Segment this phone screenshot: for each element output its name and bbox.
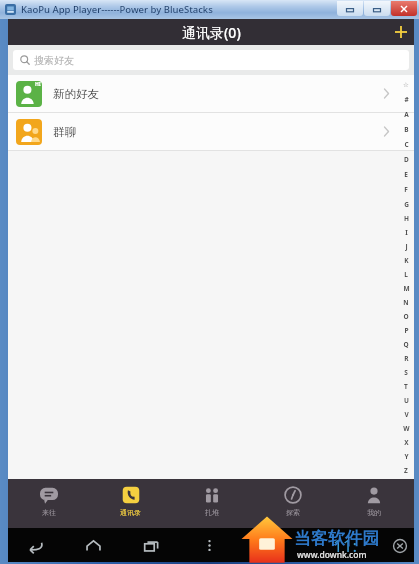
button[interactable]: 探索 [252, 479, 333, 528]
staticText: 通讯录 [120, 508, 141, 517]
staticText: R [404, 354, 409, 363]
button[interactable]: More options [192, 530, 226, 560]
button[interactable]: 搜索好友 [13, 50, 409, 70]
staticText: 我的 [367, 508, 381, 517]
staticText: E [404, 170, 408, 179]
button[interactable]: Window [364, 1, 390, 16]
staticText: 探索 [286, 508, 300, 517]
staticText: 搜索好友 [34, 54, 74, 67]
staticText: L [404, 270, 408, 279]
button[interactable]: HI [8, 75, 414, 112]
staticText: 11: [333, 534, 358, 557]
staticText: W [403, 424, 410, 433]
staticText: KaoPu App Player------Power by BlueStack… [21, 3, 213, 16]
staticText: HI [35, 81, 41, 88]
staticText: G [404, 200, 409, 209]
staticText: # [404, 95, 409, 104]
staticText: Q [403, 340, 409, 349]
staticText: Y [404, 452, 409, 461]
staticText: 新的好友 [53, 87, 99, 101]
staticText: N [403, 298, 409, 307]
staticText: D [404, 155, 409, 164]
button[interactable]: Window [337, 1, 363, 16]
staticText: K [404, 256, 409, 265]
staticText: H [404, 214, 409, 223]
staticText: X [404, 438, 409, 447]
staticText: T [404, 382, 408, 391]
staticText: www.downk.com [297, 549, 367, 561]
button[interactable]: 扎堆 [171, 479, 252, 528]
staticText: ☆ [403, 81, 409, 89]
staticText: U [404, 396, 409, 405]
staticText: J [405, 242, 408, 251]
staticText: S [404, 368, 408, 377]
staticText: 当客软件园 [294, 528, 379, 549]
button[interactable]: 通讯录 [90, 479, 171, 528]
staticText: 来往 [42, 508, 56, 517]
button[interactable]: Home [76, 530, 110, 560]
button[interactable]: 我的 [333, 479, 414, 528]
staticText: C [404, 140, 409, 149]
staticText: F [404, 185, 408, 194]
button[interactable]: Recents [134, 530, 168, 560]
staticText: A [404, 110, 409, 119]
button[interactable]: 群聊 [8, 113, 414, 150]
staticText: 群聊 [53, 125, 76, 139]
button[interactable]: 来往 [8, 479, 90, 528]
staticText: I [405, 228, 408, 237]
staticText: 通讯录(0) [182, 23, 241, 42]
button[interactable]: Add contact [388, 19, 414, 45]
button[interactable]: Alphabet index [398, 75, 414, 479]
staticText: M [403, 284, 410, 293]
staticText: B [404, 125, 409, 134]
staticText: O [403, 312, 409, 321]
button[interactable]: Close [391, 1, 417, 16]
staticText: P [404, 326, 409, 335]
button[interactable]: Back [18, 530, 52, 560]
staticText: V [404, 410, 409, 419]
staticText: 扎堆 [205, 508, 219, 517]
staticText: Z [404, 466, 408, 475]
